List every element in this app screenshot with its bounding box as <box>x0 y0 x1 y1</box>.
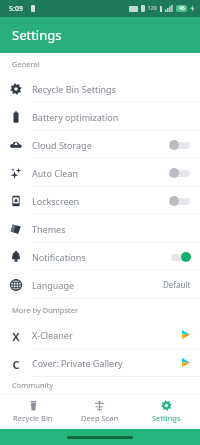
staticText: Language <box>32 279 163 291</box>
staticText: 5:09 <box>9 4 23 14</box>
staticText: Auto Clean <box>32 167 169 179</box>
staticText: 46 <box>179 5 185 12</box>
staticText: Community <box>12 380 54 390</box>
staticText: Settings <box>12 26 62 44</box>
staticText: X-Cleaner <box>32 329 180 341</box>
staticText: 120 <box>148 5 157 12</box>
staticText: Deep Scan <box>81 413 119 423</box>
button[interactable]: C <box>0 349 200 377</box>
button[interactable]: Recycle Bin <box>0 394 66 429</box>
button[interactable]: Language <box>0 271 200 299</box>
button[interactable]: Open in Play Store <box>180 357 191 368</box>
staticText: Themes <box>32 223 200 235</box>
button[interactable]: Cloud Storage <box>0 131 200 159</box>
button[interactable]: Settings <box>133 394 200 429</box>
staticText: C <box>12 357 20 369</box>
staticText: X <box>12 329 20 341</box>
button[interactable]: X <box>0 321 200 349</box>
staticText: Battery optimization <box>32 111 200 123</box>
staticText: Settings <box>152 413 181 423</box>
button[interactable]: Lockscreen <box>0 187 200 215</box>
button[interactable] <box>169 139 191 151</box>
staticText: General <box>12 59 40 69</box>
button[interactable]: Auto Clean <box>0 159 200 187</box>
button[interactable]: Open in Play Store <box>180 329 191 340</box>
staticText: Notifications <box>32 251 169 263</box>
staticText: Cover: Private Gallery <box>32 357 180 369</box>
staticText: Default <box>163 279 191 290</box>
staticText: More by Dumpster <box>12 305 79 315</box>
staticText: Cloud Storage <box>32 139 169 151</box>
button[interactable] <box>169 195 191 207</box>
button[interactable] <box>169 251 191 263</box>
button[interactable] <box>169 167 191 179</box>
button[interactable]: Recycle Bin Settings <box>0 75 200 103</box>
button[interactable]: Deep Scan <box>66 394 133 429</box>
staticText: Recycle Bin Settings <box>32 83 200 95</box>
button[interactable]: Battery optimization <box>0 103 200 131</box>
staticText: Lockscreen <box>32 195 169 207</box>
button[interactable]: Themes <box>0 215 200 243</box>
staticText: Recycle Bin <box>13 413 53 423</box>
button[interactable]: Notifications <box>0 243 200 271</box>
